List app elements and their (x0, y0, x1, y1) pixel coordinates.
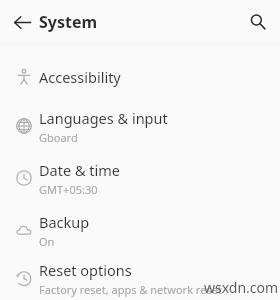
button[interactable]: Languages & input (0, 100, 280, 152)
staticText: Backup (39, 212, 90, 232)
button[interactable]: Date & time (0, 152, 280, 204)
button[interactable]: Search (242, 6, 274, 38)
staticText: Factory reset, apps & network reset (39, 282, 222, 297)
staticText: Date & time (39, 160, 120, 180)
button[interactable]: Reset options (0, 256, 280, 300)
staticText: System (39, 11, 98, 33)
staticText: Languages & input (39, 108, 168, 128)
staticText: Reset options (39, 260, 132, 280)
staticText: On (39, 234, 55, 249)
staticText: Gboard (39, 130, 78, 145)
button[interactable]: Accessibility (0, 53, 280, 100)
button[interactable]: Back (6, 6, 38, 38)
staticText: Accessibility (39, 67, 121, 87)
staticText: GMT+05:30 (39, 182, 98, 197)
staticText: wsxdn.com (204, 278, 279, 297)
button[interactable]: Backup (0, 204, 280, 256)
